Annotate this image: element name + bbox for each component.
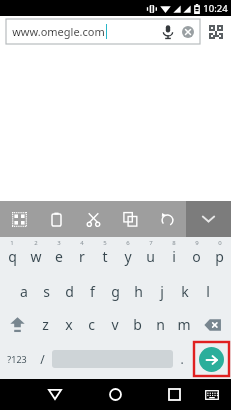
button[interactable]: www.omegle.com: [6, 19, 200, 44]
staticText: x: [65, 315, 73, 334]
staticText: u: [146, 247, 155, 266]
button[interactable]: Back: [41, 379, 69, 410]
staticText: 10:24: [203, 2, 228, 15]
staticText: r: [79, 247, 85, 266]
staticText: h: [134, 282, 143, 301]
button[interactable]: l: [196, 275, 219, 308]
staticText: n: [156, 315, 165, 334]
staticText: p: [215, 247, 224, 266]
staticText: s: [43, 282, 50, 301]
button[interactable]: s: [35, 275, 58, 308]
staticText: 0: [218, 239, 222, 247]
staticText: 1: [10, 239, 14, 247]
staticText: i: [172, 247, 176, 266]
button[interactable]: 6: [116, 237, 139, 275]
staticText: l: [206, 282, 210, 301]
button[interactable]: 8: [162, 237, 185, 275]
button[interactable]: f: [81, 275, 104, 308]
button[interactable]: Shift: [0, 308, 34, 341]
staticText: 5: [103, 239, 107, 247]
staticText: k: [181, 282, 189, 301]
button[interactable]: Go: [199, 347, 224, 372]
button[interactable]: Backspace: [195, 308, 231, 341]
staticText: 3: [57, 239, 61, 247]
staticText: 6: [126, 239, 130, 247]
button[interactable]: Select all: [0, 201, 38, 237]
button[interactable]: Scan QR code: [204, 20, 228, 44]
staticText: q: [8, 247, 17, 266]
staticText: w: [30, 247, 42, 266]
staticText: c: [88, 315, 95, 334]
button[interactable]: 5: [93, 237, 116, 275]
button[interactable]: x: [57, 308, 80, 341]
staticText: .: [180, 351, 184, 367]
button[interactable]: z: [34, 308, 57, 341]
button[interactable]: c: [80, 308, 103, 341]
button[interactable]: /: [33, 341, 52, 377]
staticText: d: [65, 282, 74, 301]
staticText: m: [177, 315, 191, 334]
button[interactable]: Clear text: [180, 24, 195, 39]
button[interactable]: a: [12, 275, 35, 308]
button[interactable]: b: [126, 308, 149, 341]
button[interactable]: n: [149, 308, 172, 341]
staticText: b: [133, 315, 142, 334]
button[interactable]: Undo: [149, 201, 186, 237]
button[interactable]: 9: [185, 237, 208, 275]
button[interactable]: d: [58, 275, 81, 308]
staticText: ?123: [7, 353, 27, 365]
button[interactable]: m: [172, 308, 195, 341]
staticText: z: [42, 315, 49, 334]
staticText: y: [124, 247, 132, 266]
button[interactable]: 0: [208, 237, 231, 275]
staticText: v: [111, 315, 119, 334]
button[interactable]: .: [173, 341, 191, 377]
staticText: /: [40, 351, 45, 367]
button[interactable]: g: [104, 275, 127, 308]
button[interactable]: 2: [24, 237, 47, 275]
staticText: e: [55, 247, 63, 266]
button[interactable]: 4: [70, 237, 93, 275]
button[interactable]: Home: [101, 379, 130, 410]
button[interactable]: k: [173, 275, 196, 308]
button[interactable]: 1: [0, 237, 24, 275]
button[interactable]: ?123: [0, 341, 33, 377]
staticText: a: [20, 282, 28, 301]
staticText: 7: [149, 239, 153, 247]
staticText: 8: [172, 239, 176, 247]
button[interactable]: v: [103, 308, 126, 341]
button[interactable]: h: [127, 275, 150, 308]
button[interactable]: Recents: [160, 379, 189, 410]
staticText: www.omegle.com: [12, 24, 105, 39]
staticText: g: [111, 282, 120, 301]
staticText: o: [192, 247, 201, 266]
button[interactable]: 7: [139, 237, 162, 275]
button[interactable]: Paste: [38, 201, 75, 237]
button[interactable]: Collapse toolbar: [186, 201, 231, 237]
staticText: 4: [80, 239, 84, 247]
button[interactable]: j: [150, 275, 173, 308]
button[interactable]: Cut: [75, 201, 112, 237]
button[interactable]: Voice search: [160, 24, 175, 39]
staticText: t: [102, 247, 108, 266]
button[interactable]: Switch keyboard: [197, 379, 226, 410]
staticText: f: [90, 282, 95, 301]
button[interactable]: Copy: [112, 201, 149, 237]
staticText: j: [160, 282, 164, 301]
staticText: 2: [34, 239, 38, 247]
staticText: 9: [195, 239, 199, 247]
button[interactable]: 3: [47, 237, 70, 275]
